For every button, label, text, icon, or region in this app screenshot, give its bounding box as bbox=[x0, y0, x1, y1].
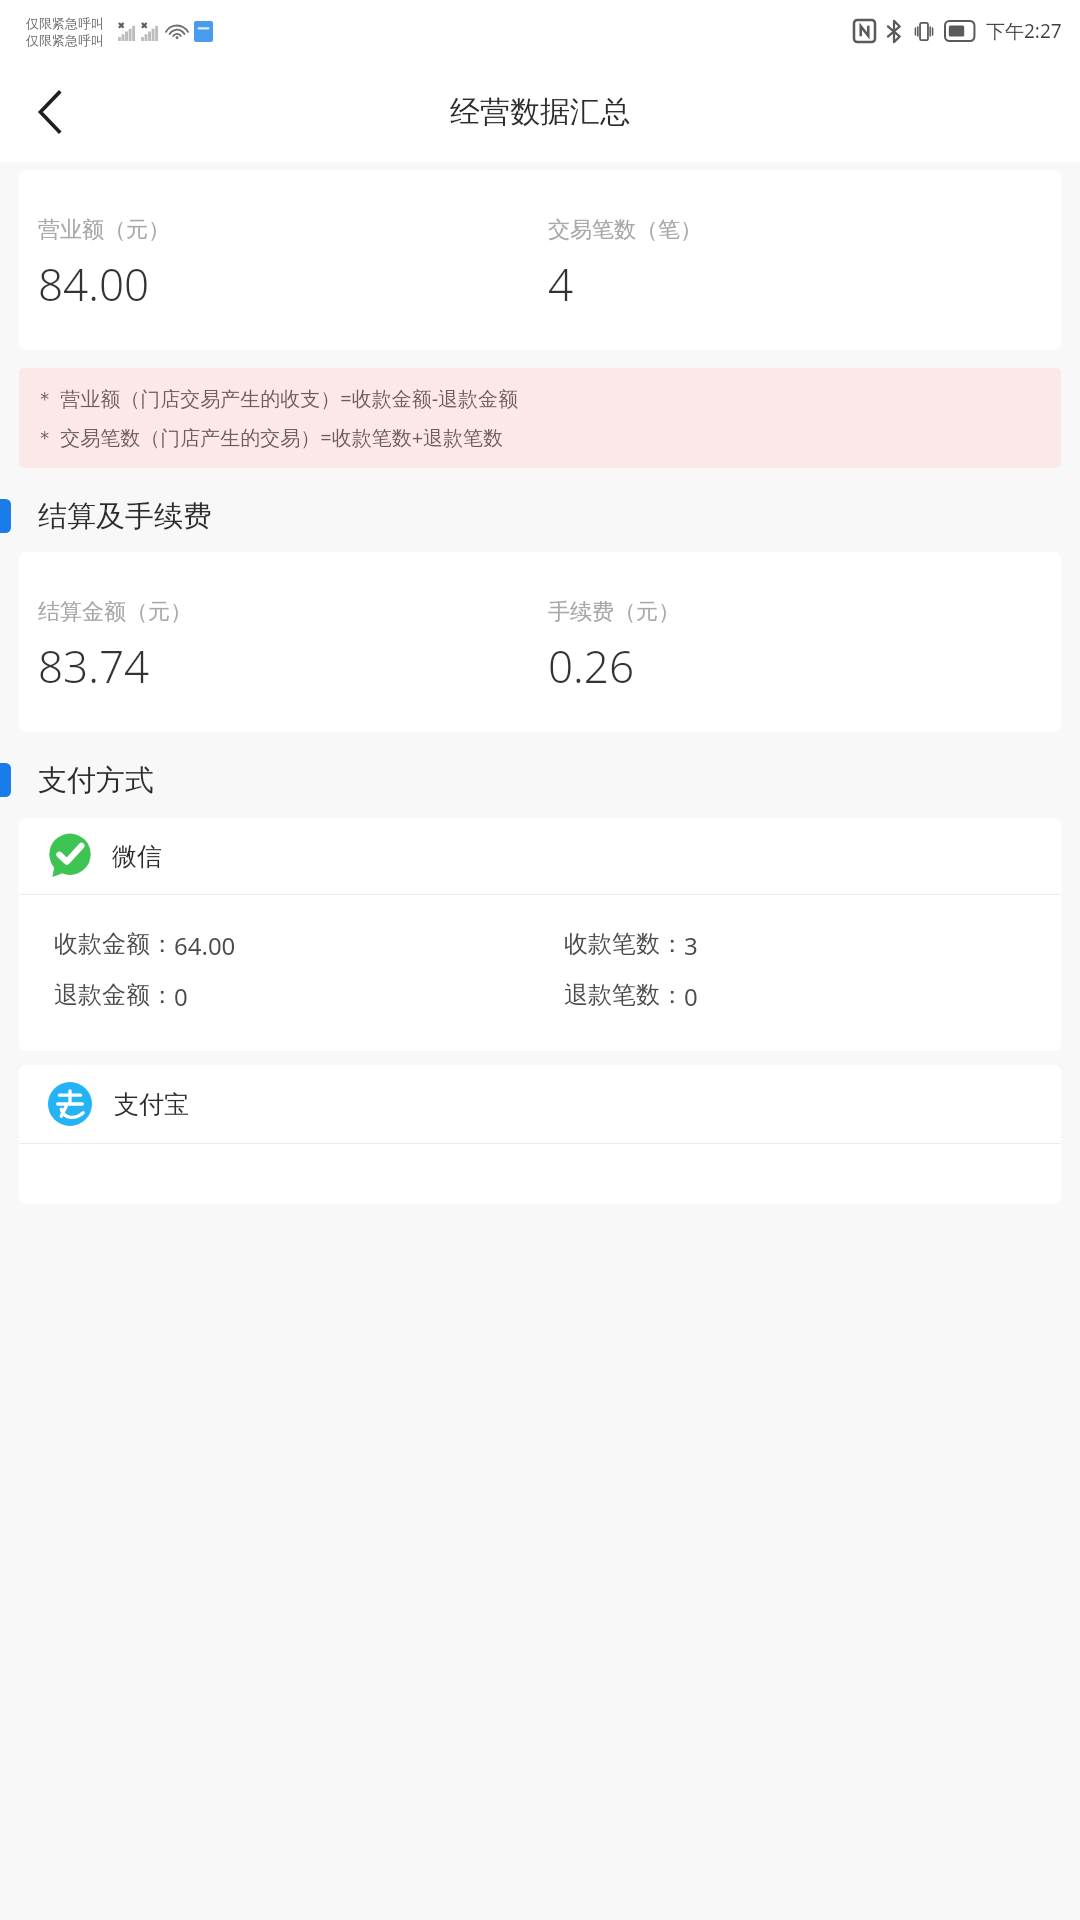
button[interactable]: 营业额（元） bbox=[19, 170, 1061, 350]
staticText: 营业额（元） bbox=[38, 216, 170, 244]
staticText: 64.00 bbox=[174, 929, 236, 962]
staticText: 0 bbox=[174, 980, 188, 1013]
staticText: 收款金额： bbox=[54, 929, 174, 959]
staticText: 退款金额： bbox=[54, 980, 174, 1010]
staticText: ＊ 交易笔数（门店产生的交易）=收款笔数+退款笔数 bbox=[35, 424, 504, 451]
staticText: 84.00 bbox=[38, 254, 150, 314]
staticText: 微信 bbox=[112, 841, 162, 872]
staticText: 支付方式 bbox=[38, 762, 154, 799]
staticText: ＊ 营业额（门店交易产生的收支）=收款金额-退款金额 bbox=[35, 385, 519, 412]
staticText: 退款笔数： bbox=[564, 980, 684, 1010]
staticText: 交易笔数（笔） bbox=[548, 216, 702, 244]
staticText: 下午2:27 bbox=[986, 18, 1062, 44]
staticText: 3 bbox=[684, 929, 698, 962]
staticText: 收款笔数： bbox=[564, 929, 684, 959]
staticText: 0 bbox=[684, 980, 698, 1013]
button[interactable]: 结算金额（元） bbox=[19, 552, 1061, 732]
staticText: 0.26 bbox=[548, 636, 635, 696]
staticText: 经营数据汇总 bbox=[450, 93, 630, 131]
button[interactable]: 微信 bbox=[19, 818, 1061, 1051]
staticText: 手续费（元） bbox=[548, 598, 680, 626]
staticText: 83.74 bbox=[38, 636, 150, 696]
staticText: 结算及手续费 bbox=[38, 498, 212, 535]
button[interactable]: 支付宝 bbox=[19, 1065, 1061, 1204]
staticText: 仅限紧急呼叫 bbox=[26, 15, 104, 31]
button[interactable]: Back bbox=[14, 76, 86, 148]
staticText: 仅限紧急呼叫 bbox=[26, 32, 104, 48]
staticText: 4 bbox=[548, 254, 574, 314]
staticText: 支付宝 bbox=[114, 1089, 189, 1120]
staticText: 结算金额（元） bbox=[38, 598, 192, 626]
